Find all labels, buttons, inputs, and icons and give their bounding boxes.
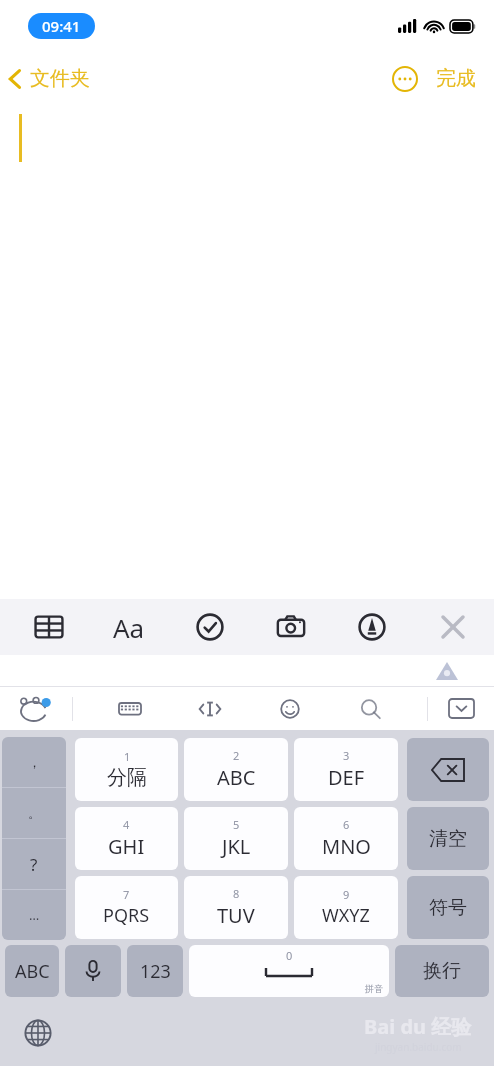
button[interactable]: 5 — [184, 807, 288, 870]
staticText: ? — [30, 853, 38, 876]
button[interactable]: More options — [388, 62, 422, 96]
staticText: 8 — [233, 886, 240, 901]
staticText: 分隔 — [107, 765, 147, 790]
staticText: ABC — [15, 959, 50, 984]
staticText: 123 — [140, 959, 171, 984]
staticText: 拼音 — [365, 983, 383, 994]
button[interactable]: Emoji — [267, 687, 313, 730]
button[interactable]: 1 — [75, 738, 178, 801]
button[interactable]: 3 — [294, 738, 398, 801]
button[interactable]: Space — [189, 945, 389, 997]
staticText: 9 — [343, 887, 350, 902]
button[interactable]: Cursor control — [187, 687, 233, 730]
button[interactable]: Voice input — [65, 945, 121, 997]
staticText: ABC — [217, 764, 256, 791]
staticText: 3 — [343, 748, 350, 763]
button[interactable]: 6 — [294, 807, 398, 870]
staticText: MNO — [322, 833, 371, 860]
button[interactable]: Text format — [102, 600, 156, 654]
staticText: … — [29, 906, 40, 924]
button[interactable]: 7 — [75, 876, 178, 939]
staticText: GHI — [108, 833, 145, 860]
button[interactable]: … — [2, 890, 66, 940]
button[interactable]: 完成 — [432, 60, 480, 97]
staticText: 7 — [123, 887, 130, 902]
staticText: 换行 — [423, 959, 461, 983]
staticText: 符号 — [429, 896, 467, 920]
button[interactable]: Search — [347, 687, 393, 730]
button[interactable]: 换行 — [395, 945, 489, 997]
button[interactable]: Keyboard layout — [107, 687, 153, 730]
staticText: 4 — [123, 817, 130, 832]
button[interactable]: 文件夹 — [0, 60, 100, 97]
staticText: 清空 — [429, 827, 467, 851]
staticText: 0 — [286, 948, 293, 963]
button[interactable]: ， — [2, 737, 66, 787]
staticText: DEF — [328, 764, 365, 791]
button[interactable]: 清空 — [407, 807, 489, 870]
staticText: 5 — [233, 817, 240, 832]
button[interactable]: ? — [2, 839, 66, 889]
staticText: 09:41 — [42, 16, 81, 36]
button[interactable]: Switch language — [16, 1011, 60, 1055]
staticText: 2 — [233, 748, 240, 763]
button[interactable]: 2 — [184, 738, 288, 801]
staticText: 6 — [343, 817, 350, 832]
button[interactable]: Checklist — [183, 600, 237, 654]
staticText: ， — [28, 754, 41, 770]
button[interactable]: ABC — [5, 945, 59, 997]
button[interactable]: 4 — [75, 807, 178, 870]
staticText: JKL — [222, 833, 251, 860]
staticText: 。 — [28, 805, 41, 821]
button[interactable]: Baidu input — [0, 687, 72, 730]
staticText: 完成 — [436, 66, 476, 91]
button[interactable]: 符号 — [407, 876, 489, 939]
button[interactable]: 8 — [184, 876, 288, 939]
staticText: 1 — [124, 749, 131, 764]
button[interactable]: Table — [22, 600, 76, 654]
button[interactable]: Close keyboard — [426, 600, 480, 654]
button[interactable]: Hide keyboard — [428, 687, 494, 730]
button[interactable]: Delete — [407, 738, 489, 801]
staticText: 文件夹 — [30, 66, 90, 91]
button[interactable]: Markup — [345, 600, 399, 654]
staticText: PQRS — [103, 903, 150, 928]
button[interactable]: 123 — [127, 945, 183, 997]
button[interactable]: 9 — [294, 876, 398, 939]
button[interactable]: Camera — [264, 600, 318, 654]
staticText: Bai du 经验 — [364, 1013, 472, 1040]
staticText: Aa — [113, 610, 145, 645]
staticText: TUV — [217, 902, 255, 929]
staticText: WXYZ — [322, 903, 370, 928]
